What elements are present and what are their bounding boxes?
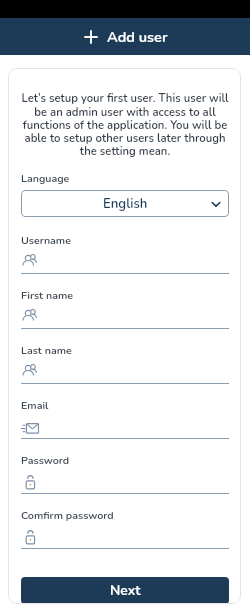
staticText: First name xyxy=(21,288,73,303)
other: Open language menu xyxy=(210,198,222,210)
staticText: Add user xyxy=(107,27,168,47)
button[interactable]: Next xyxy=(21,577,229,604)
button[interactable]: English xyxy=(21,190,229,217)
staticText: Next xyxy=(110,581,141,600)
staticText: Last name xyxy=(21,343,72,358)
staticText: Let’s setup your first user. This user w… xyxy=(21,91,229,159)
staticText: Password xyxy=(21,453,70,468)
staticText: Comfirm password xyxy=(21,508,114,523)
staticText: Language xyxy=(21,171,70,186)
button[interactable]: Add user xyxy=(0,18,250,55)
staticText: English xyxy=(103,195,148,213)
staticText: Username xyxy=(21,233,71,248)
staticText: Email xyxy=(21,398,49,413)
